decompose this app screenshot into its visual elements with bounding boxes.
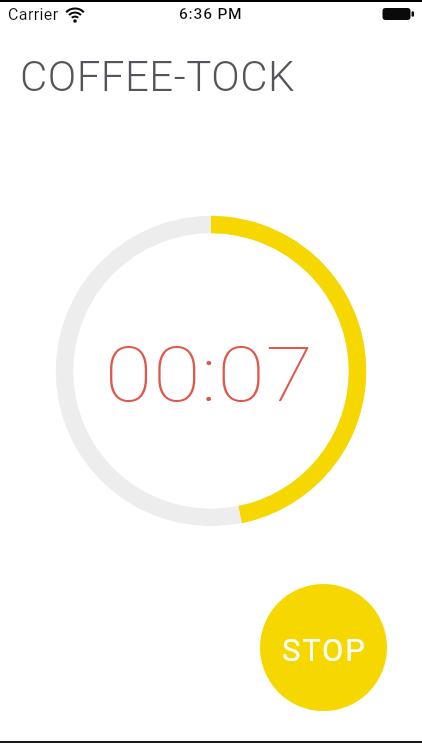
staticText: 6:36 PM <box>179 5 243 23</box>
staticText: STOP <box>282 632 367 668</box>
staticText: Carrier <box>8 5 59 24</box>
button[interactable]: STOP <box>260 584 387 711</box>
staticText: 00:07 <box>105 330 314 419</box>
staticText: COFFEE-TOCK <box>20 52 295 101</box>
